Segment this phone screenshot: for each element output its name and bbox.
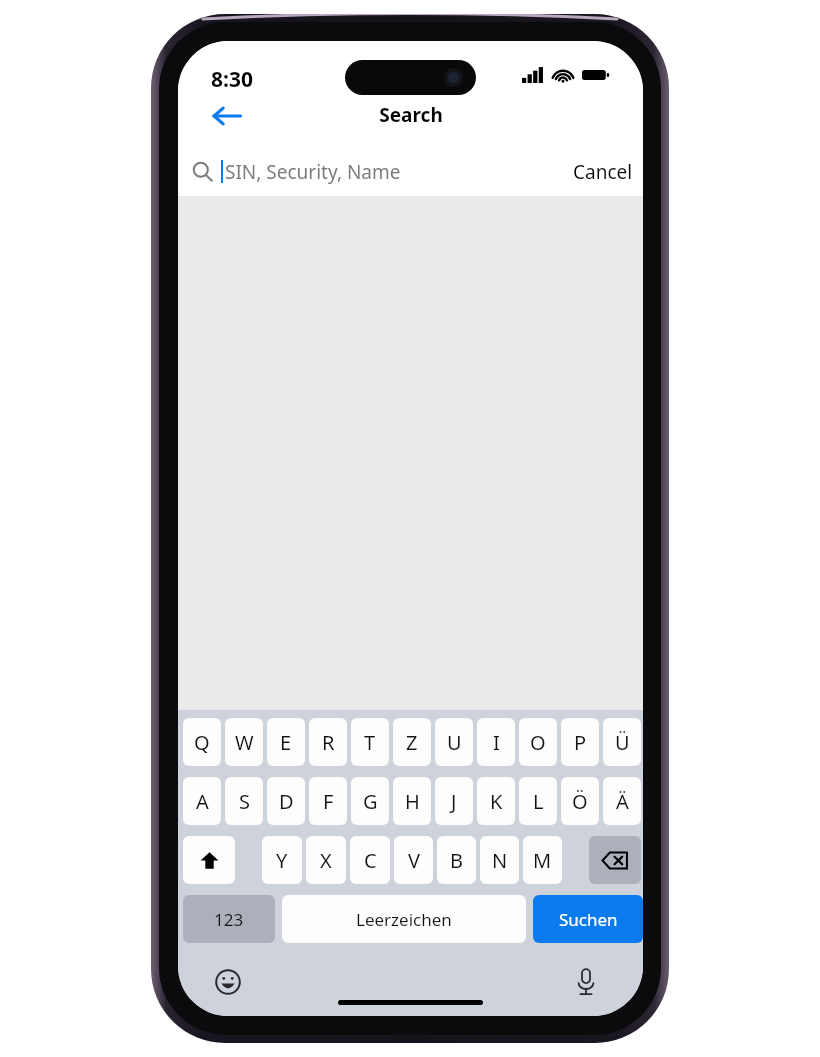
- button[interactable]: U: [435, 718, 473, 766]
- button[interactable]: Backspace: [589, 836, 641, 884]
- staticText: Search: [379, 102, 443, 128]
- staticText: F: [323, 788, 334, 815]
- staticText: E: [280, 729, 292, 756]
- button[interactable]: Ü: [603, 718, 641, 766]
- button[interactable]: Dictation: [566, 962, 606, 1002]
- staticText: S: [239, 788, 250, 815]
- button[interactable]: Y: [262, 836, 302, 884]
- button[interactable]: Cancel: [563, 149, 643, 194]
- staticText: U: [447, 729, 462, 756]
- button[interactable]: P: [561, 718, 599, 766]
- button[interactable]: Back: [200, 96, 254, 136]
- staticText: G: [363, 788, 378, 815]
- button[interactable]: A: [183, 777, 221, 825]
- button[interactable]: H: [393, 777, 431, 825]
- staticText: Q: [194, 729, 210, 756]
- staticText: C: [364, 847, 377, 874]
- staticText: V: [408, 847, 420, 874]
- staticText: M: [533, 847, 552, 874]
- staticText: H: [405, 788, 420, 815]
- button[interactable]: Emoji: [208, 962, 248, 1002]
- staticText: Ö: [572, 788, 588, 815]
- staticText: P: [574, 729, 587, 756]
- staticText: O: [530, 729, 546, 756]
- staticText: Leerzeichen: [356, 908, 452, 931]
- button[interactable]: J: [435, 777, 473, 825]
- button[interactable]: X: [306, 836, 346, 884]
- button[interactable]: Q: [183, 718, 221, 766]
- button[interactable]: Ö: [561, 777, 599, 825]
- staticText: Suchen: [559, 908, 618, 931]
- staticText: T: [364, 729, 376, 756]
- button[interactable]: Ä: [603, 777, 641, 825]
- staticText: J: [451, 788, 457, 815]
- staticText: B: [450, 847, 463, 874]
- button[interactable]: Shift: [183, 836, 235, 884]
- button[interactable]: D: [267, 777, 305, 825]
- staticText: W: [235, 729, 254, 756]
- button[interactable]: Suchen: [533, 895, 643, 943]
- button[interactable]: O: [519, 718, 557, 766]
- staticText: Ä: [616, 788, 629, 815]
- staticText: A: [196, 788, 209, 815]
- button[interactable]: 123: [183, 895, 275, 943]
- staticText: Y: [276, 847, 288, 874]
- button[interactable]: N: [480, 836, 519, 884]
- button[interactable]: K: [477, 777, 515, 825]
- button[interactable]: B: [437, 836, 476, 884]
- staticText: 123: [214, 908, 244, 931]
- staticText: Z: [406, 729, 418, 756]
- button[interactable]: Leerzeichen: [282, 895, 526, 943]
- button[interactable]: V: [394, 836, 433, 884]
- staticText: D: [279, 788, 294, 815]
- button[interactable]: I: [477, 718, 515, 766]
- staticText: R: [322, 729, 335, 756]
- button[interactable]: C: [350, 836, 390, 884]
- button[interactable]: M: [523, 836, 562, 884]
- button[interactable]: Z: [393, 718, 431, 766]
- button[interactable]: T: [351, 718, 389, 766]
- staticText: SIN, Security, Name: [225, 159, 401, 185]
- staticText: I: [493, 729, 500, 756]
- staticText: X: [320, 847, 332, 874]
- staticText: 8:30: [211, 65, 253, 94]
- button[interactable]: SIN, Security, Name: [178, 149, 563, 194]
- staticText: N: [492, 847, 508, 874]
- button[interactable]: W: [225, 718, 263, 766]
- staticText: L: [533, 788, 544, 815]
- staticText: Cancel: [573, 159, 633, 185]
- button[interactable]: R: [309, 718, 347, 766]
- button[interactable]: E: [267, 718, 305, 766]
- button[interactable]: F: [309, 777, 347, 825]
- button[interactable]: L: [519, 777, 557, 825]
- staticText: Ü: [615, 729, 630, 756]
- button[interactable]: G: [351, 777, 389, 825]
- staticText: K: [490, 788, 503, 815]
- button[interactable]: S: [225, 777, 263, 825]
